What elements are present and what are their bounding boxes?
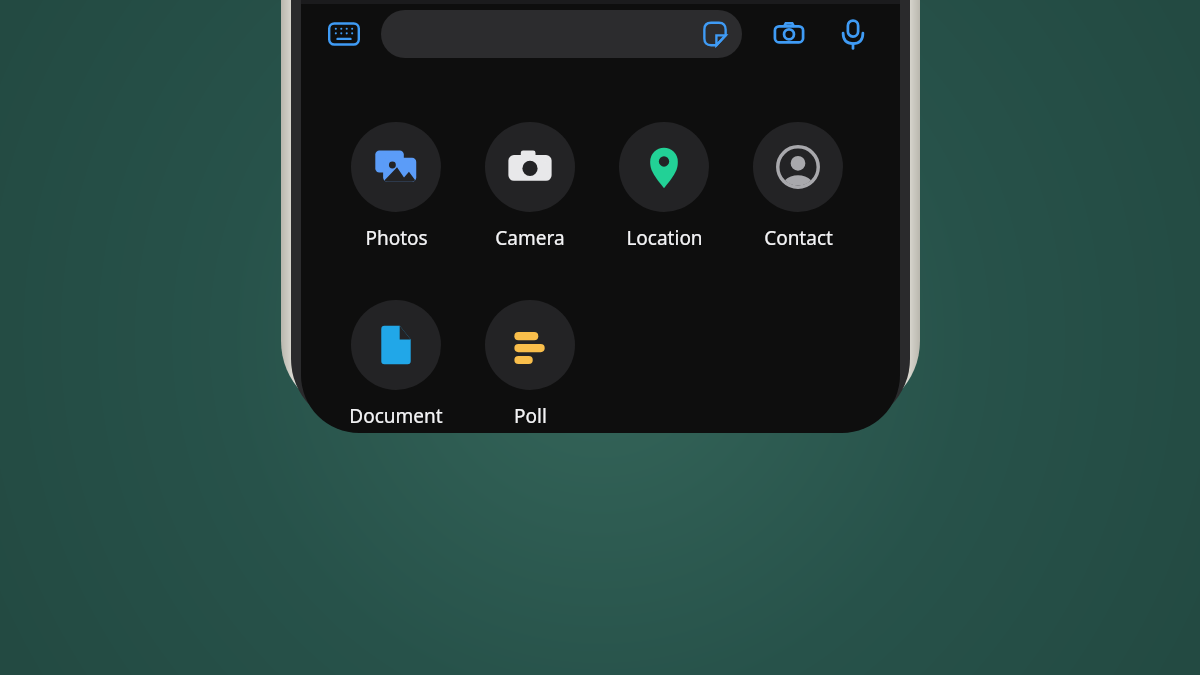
staticText: Camera [495, 225, 565, 251]
button[interactable]: Camera [767, 12, 811, 56]
button[interactable]: Keyboard [322, 12, 366, 56]
button[interactable]: Contact [736, 122, 860, 251]
staticText: Document [349, 403, 443, 429]
staticText: Poll [514, 403, 547, 429]
button[interactable]: Document [334, 300, 458, 429]
button[interactable]: Location [602, 122, 726, 251]
button[interactable]: Poll [468, 300, 592, 429]
button[interactable]: Voice message [831, 12, 875, 56]
staticText: Contact [764, 225, 833, 251]
button[interactable]: Stickers [698, 17, 732, 51]
button[interactable]: Camera [468, 122, 592, 251]
staticText: Photos [365, 225, 428, 251]
button[interactable]: Message [381, 10, 742, 58]
button[interactable]: Photos [334, 122, 458, 251]
staticText: Location [626, 225, 703, 251]
